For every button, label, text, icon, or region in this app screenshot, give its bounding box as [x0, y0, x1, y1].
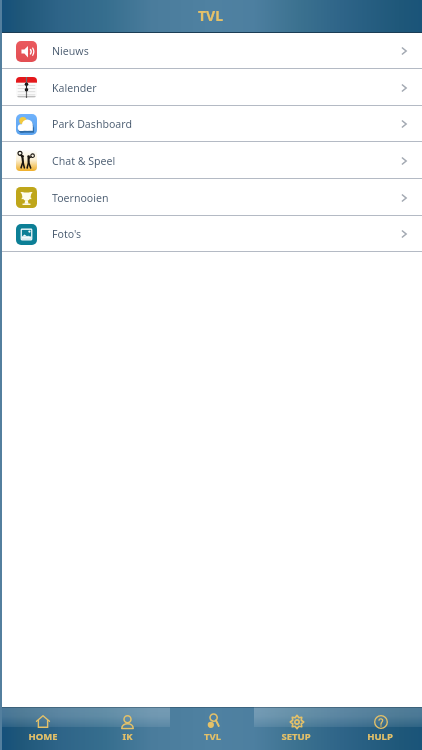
button[interactable]: Foto's: [0, 216, 422, 252]
button[interactable]: TVL: [170, 707, 254, 750]
staticText: Chat & Speel: [52, 154, 116, 168]
staticText: HOME: [28, 730, 58, 743]
button[interactable]: Kalender: [0, 69, 422, 106]
staticText: TVL: [204, 730, 221, 743]
staticText: Kalender: [52, 81, 97, 95]
staticText: IK: [122, 730, 133, 743]
staticText: Foto's: [52, 227, 82, 241]
button[interactable]: Setup: [254, 707, 338, 750]
staticText: TVL: [198, 6, 224, 25]
staticText: Park Dashboard: [52, 117, 132, 131]
button[interactable]: Help: [338, 707, 422, 750]
staticText: Toernooien: [52, 191, 109, 205]
button[interactable]: Home: [0, 707, 85, 750]
button[interactable]: Nieuws: [0, 33, 422, 69]
staticText: Nieuws: [52, 44, 89, 58]
button[interactable]: Park Dashboard: [0, 106, 422, 142]
button[interactable]: Toernooien: [0, 179, 422, 216]
staticText: SETUP: [281, 730, 311, 743]
button[interactable]: Chat & Speel: [0, 142, 422, 179]
staticText: HULP: [367, 730, 393, 743]
button[interactable]: Profile: [85, 707, 170, 750]
